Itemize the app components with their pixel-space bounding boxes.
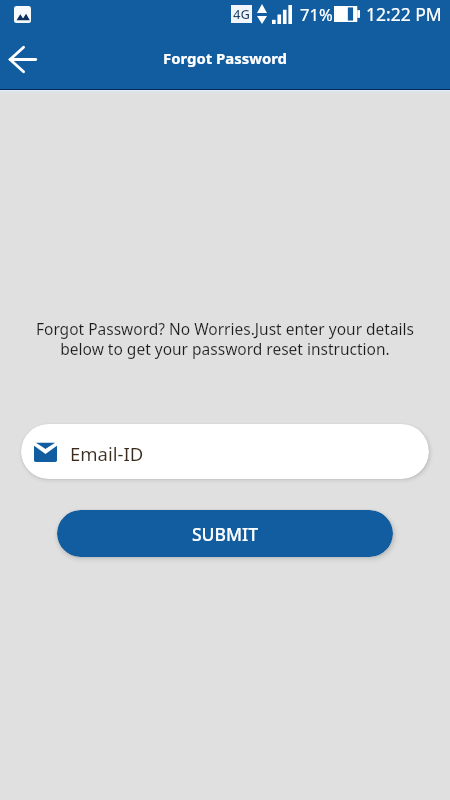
staticText: Forgot Password? No Worries.Just enter y… [20,318,430,360]
button[interactable]: SUBMIT [57,510,393,557]
staticText: 12:22 PM [366,2,442,26]
staticText: SUBMIT [192,522,259,546]
button[interactable]: Email-ID [21,424,429,479]
button[interactable]: Back [0,28,45,89]
staticText: 71% [300,3,333,25]
staticText: 4G [233,5,250,23]
staticText: Forgot Password [163,48,287,68]
staticText: Email-ID [70,441,144,466]
